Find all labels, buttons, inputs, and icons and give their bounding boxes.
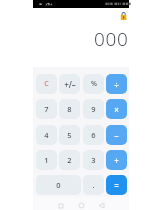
- button[interactable]: C: [36, 74, 57, 94]
- staticText: C: [44, 79, 49, 89]
- button[interactable]: 1: [36, 150, 57, 170]
- staticText: 9: [91, 104, 96, 114]
- button[interactable]: 7: [36, 99, 57, 119]
- staticText: ÷: [114, 79, 119, 90]
- staticText: −: [114, 130, 119, 141]
- button[interactable]: −: [106, 125, 127, 145]
- button[interactable]: +: [106, 150, 127, 170]
- staticText: =: [114, 180, 119, 191]
- button[interactable]: 5: [59, 125, 80, 145]
- button[interactable]: ×: [106, 99, 127, 119]
- button[interactable]: Home: [71, 201, 91, 210]
- staticText: %: [91, 79, 97, 89]
- button[interactable]: 6: [83, 125, 104, 145]
- button[interactable]: Lock: [118, 10, 129, 21]
- staticText: 2: [67, 155, 72, 165]
- button[interactable]: .: [83, 175, 104, 195]
- staticText: 7: [44, 104, 49, 114]
- staticText: 6: [91, 130, 96, 140]
- staticText: 1: [44, 155, 49, 165]
- staticText: 4: [44, 130, 49, 140]
- staticText: +/–: [64, 79, 76, 90]
- button[interactable]: Back: [91, 201, 111, 210]
- button[interactable]: 9: [83, 99, 104, 119]
- staticText: ×: [114, 104, 119, 115]
- button[interactable]: %: [83, 74, 104, 94]
- button[interactable]: Recent apps: [51, 201, 71, 210]
- button[interactable]: 0: [36, 175, 81, 195]
- button[interactable]: =: [106, 175, 127, 195]
- button[interactable]: 4: [36, 125, 57, 145]
- staticText: 8: [67, 104, 72, 114]
- staticText: 000: [94, 26, 129, 52]
- button[interactable]: +/–: [59, 74, 80, 94]
- button[interactable]: 8: [59, 99, 80, 119]
- button[interactable]: 3: [83, 150, 104, 170]
- staticText: 5: [67, 130, 72, 140]
- button[interactable]: 2: [59, 150, 80, 170]
- button[interactable]: ÷: [106, 74, 127, 94]
- staticText: 0: [56, 180, 61, 190]
- staticText: .: [92, 180, 95, 190]
- staticText: +: [114, 155, 119, 166]
- staticText: 3: [91, 155, 96, 165]
